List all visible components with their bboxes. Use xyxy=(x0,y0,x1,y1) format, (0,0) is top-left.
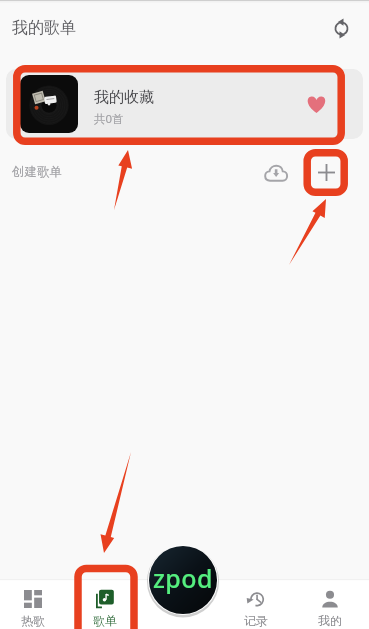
staticText: 记录 xyxy=(244,613,268,628)
button[interactable]: 歌单 xyxy=(75,579,135,629)
button[interactable]: 记录 xyxy=(226,579,286,629)
button[interactable]: 热歌 xyxy=(3,579,63,629)
staticText: zpod xyxy=(153,561,213,595)
button[interactable]: Refresh xyxy=(322,9,360,47)
button[interactable]: zpod player xyxy=(148,545,218,615)
button[interactable]: Create playlist xyxy=(309,155,343,189)
staticText: 热歌 xyxy=(21,613,45,628)
button[interactable]: 我的收藏 xyxy=(6,69,363,139)
button[interactable]: 我的 xyxy=(300,579,360,629)
staticText: 共0首 xyxy=(94,111,124,127)
staticText: 我的歌单 xyxy=(12,18,76,38)
staticText: 创建歌单 xyxy=(12,164,62,180)
button[interactable]: Import playlist xyxy=(259,155,293,189)
staticText: 我的收藏 xyxy=(94,88,154,107)
staticText: 我的 xyxy=(318,613,342,628)
staticText: 歌单 xyxy=(93,613,117,628)
